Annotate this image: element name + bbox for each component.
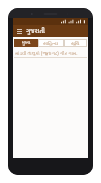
staticText: માંડવી તાલુકો (જૂનાગઢ) ગીર ગામ. xyxy=(15,50,78,56)
staticText: સાહિત્ય xyxy=(43,41,59,46)
button[interactable]: સાહિત્ય xyxy=(38,39,64,47)
button[interactable]: માંડવી તાલુકો (જૂનાગઢ) ગીર ગામ. xyxy=(13,48,88,58)
staticText: ગુજરાતી xyxy=(26,26,45,37)
button[interactable]: મુખ્ય xyxy=(14,39,38,47)
button[interactable]: Open navigation drawer xyxy=(14,26,24,36)
button[interactable]: સૂચિ xyxy=(64,39,87,47)
staticText: મુખ્ય xyxy=(22,39,31,47)
staticText: સૂચિ xyxy=(71,41,80,46)
